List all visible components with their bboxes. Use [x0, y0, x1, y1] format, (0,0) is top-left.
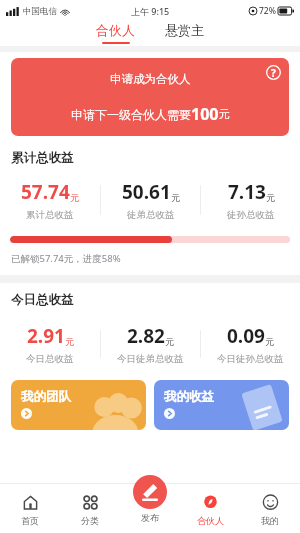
- staticText: 今日徒弟总收益: [117, 353, 184, 365]
- staticText: 我的收益: [164, 389, 214, 405]
- staticText: 72%: [259, 5, 276, 17]
- staticText: 合伙人: [197, 515, 224, 526]
- staticText: 我的团队: [21, 389, 71, 405]
- button[interactable]: 合伙人: [88, 22, 143, 44]
- button[interactable]: 发布: [133, 475, 167, 523]
- button[interactable]: 我的团队: [11, 380, 146, 430]
- staticText: 发布: [141, 512, 159, 523]
- staticText: 徒弟总收益: [127, 209, 175, 221]
- staticText: 申请成为合伙人: [110, 72, 191, 86]
- staticText: 今日总收益: [11, 292, 74, 308]
- button[interactable]: 7.13: [227, 179, 275, 221]
- staticText: 0.09: [227, 323, 265, 349]
- staticText: 今日徒孙总收益: [217, 353, 284, 365]
- staticText: 2.82: [127, 323, 165, 349]
- button[interactable]: 2.91: [26, 323, 74, 365]
- staticText: 分类: [81, 515, 99, 526]
- staticText: 中国电信: [23, 6, 57, 17]
- staticText: 今日总收益: [26, 353, 74, 365]
- button[interactable]: 0.09: [217, 323, 284, 365]
- staticText: 首页: [21, 515, 39, 526]
- button[interactable]: 悬赏主: [157, 22, 212, 38]
- button[interactable]: 分类: [60, 483, 120, 533]
- staticText: 50.61: [122, 179, 171, 205]
- staticText: 已解锁57.74元，进度58%: [11, 252, 121, 265]
- button[interactable]: 我的收益: [154, 380, 289, 430]
- staticText: 合伙人: [96, 22, 135, 38]
- staticText: 2.91: [27, 323, 65, 349]
- staticText: 我的: [261, 515, 279, 526]
- staticText: ?: [271, 66, 276, 80]
- staticText: 元: [65, 336, 74, 347]
- staticText: 徒孙总收益: [227, 209, 275, 221]
- button[interactable]: 我的: [240, 483, 300, 533]
- button[interactable]: 帮助: [266, 65, 281, 80]
- staticText: 57.74: [21, 179, 70, 205]
- staticText: 元: [70, 192, 79, 203]
- button[interactable]: 57.74: [21, 179, 79, 221]
- staticText: 元: [171, 192, 180, 203]
- button[interactable]: 首页: [0, 483, 60, 533]
- staticText: 元: [265, 336, 274, 347]
- staticText: 7.13: [228, 179, 266, 205]
- button[interactable]: 申请成为合伙人: [11, 58, 289, 136]
- staticText: 元: [219, 107, 230, 121]
- staticText: 元: [165, 336, 174, 347]
- staticText: 累计总收益: [26, 209, 74, 221]
- button[interactable]: 合伙人: [180, 483, 240, 533]
- staticText: 悬赏主: [165, 22, 204, 38]
- button[interactable]: 50.61: [122, 179, 180, 221]
- staticText: 元: [266, 192, 275, 203]
- staticText: 累计总收益: [11, 150, 74, 166]
- staticText: 100: [191, 103, 219, 125]
- staticText: 申请下一级合伙人需要: [71, 107, 191, 122]
- staticText: 上午 9:15: [131, 5, 170, 17]
- button[interactable]: 2.82: [117, 323, 184, 365]
